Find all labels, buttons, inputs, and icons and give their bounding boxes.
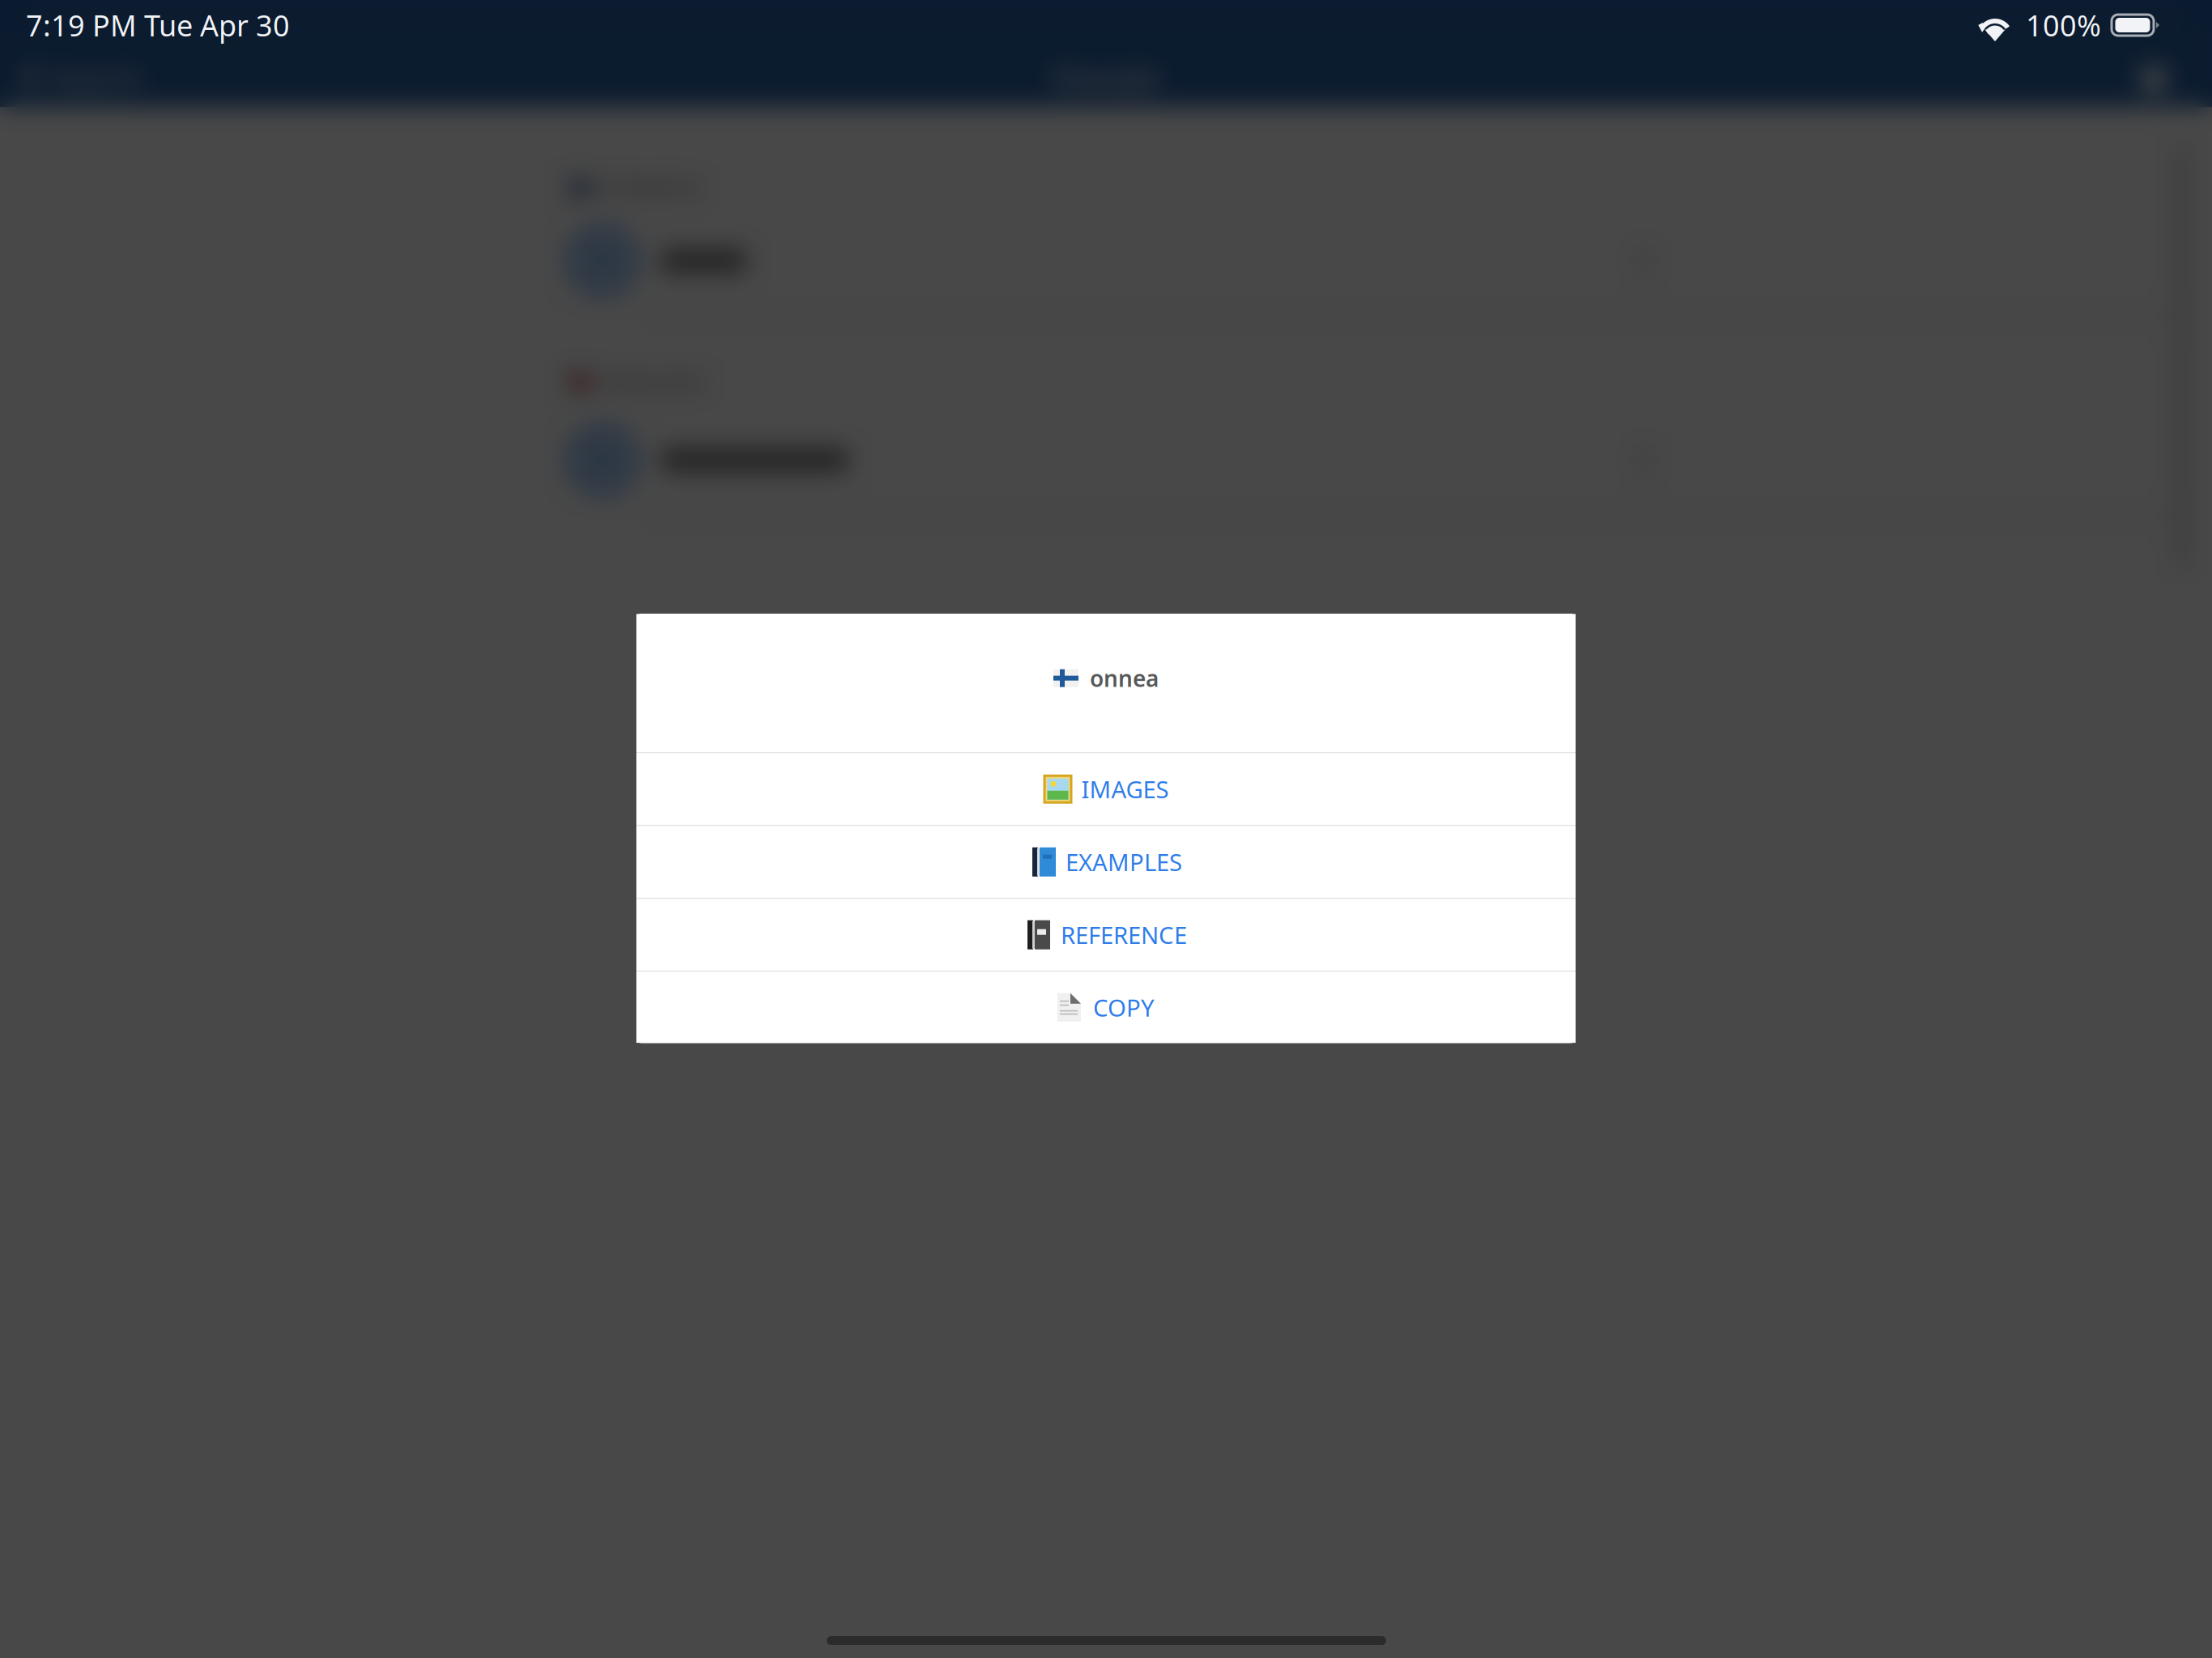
button[interactable]: COPY	[636, 972, 1576, 1043]
staticText: REFERENCE	[1061, 919, 1187, 951]
staticText: Finnish	[1053, 59, 1159, 99]
button[interactable]	[560, 404, 2183, 516]
staticText: 100%	[2026, 6, 2101, 44]
staticText: onnea	[1090, 663, 1159, 693]
staticText: EXAMPLES	[1066, 846, 1182, 878]
button[interactable]: REFERENCE	[636, 899, 1576, 971]
button[interactable]: Search	[21, 61, 175, 96]
button[interactable]: Account	[2139, 65, 2168, 94]
button[interactable]: IMAGES	[636, 753, 1576, 825]
staticText: Search	[50, 59, 142, 98]
staticText: Tue Apr 30	[144, 6, 290, 44]
staticText: 7:19 PM	[26, 6, 137, 44]
staticText: COPY	[1093, 992, 1155, 1023]
staticText: IMAGES	[1081, 773, 1169, 805]
button[interactable]: EXAMPLES	[636, 826, 1576, 898]
button[interactable]	[560, 205, 2183, 317]
